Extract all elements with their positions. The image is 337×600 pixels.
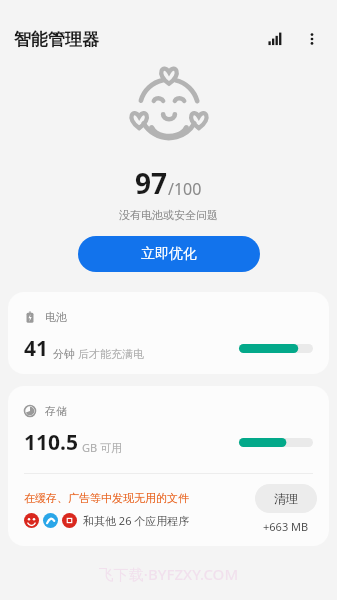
staticText: 在缓存、广告等中发现无用的文件 xyxy=(24,491,189,505)
staticText: 和其他 26 个应用程序 xyxy=(83,513,190,528)
staticText: GB 可用 xyxy=(82,440,123,455)
staticText: 110.5 xyxy=(24,428,78,457)
staticText: 97 xyxy=(135,164,168,202)
staticText: 没有电池或安全问题 xyxy=(0,208,337,222)
button[interactable]: More options xyxy=(299,26,325,52)
button[interactable]: 清理 xyxy=(255,484,317,513)
button[interactable]: 存储 xyxy=(8,386,329,473)
staticText: 电池 xyxy=(45,310,67,324)
staticText: 立即优化 xyxy=(141,245,197,263)
staticText: 后才能充满电 xyxy=(78,347,144,361)
staticText: 存储 xyxy=(45,404,67,418)
staticText: 清理 xyxy=(274,491,298,506)
staticText: 41 xyxy=(24,334,49,363)
button[interactable]: Usage statistics xyxy=(263,26,289,52)
staticText: 智能管理器 xyxy=(14,29,99,50)
button[interactable]: 电池 xyxy=(8,292,329,374)
staticText: +663 MB xyxy=(263,519,309,534)
staticText: 飞下载·BYFZXY.COM xyxy=(0,564,337,584)
staticText: /100 xyxy=(168,178,202,200)
button[interactable]: 立即优化 xyxy=(78,236,260,272)
staticText: 分钟 xyxy=(53,347,75,361)
